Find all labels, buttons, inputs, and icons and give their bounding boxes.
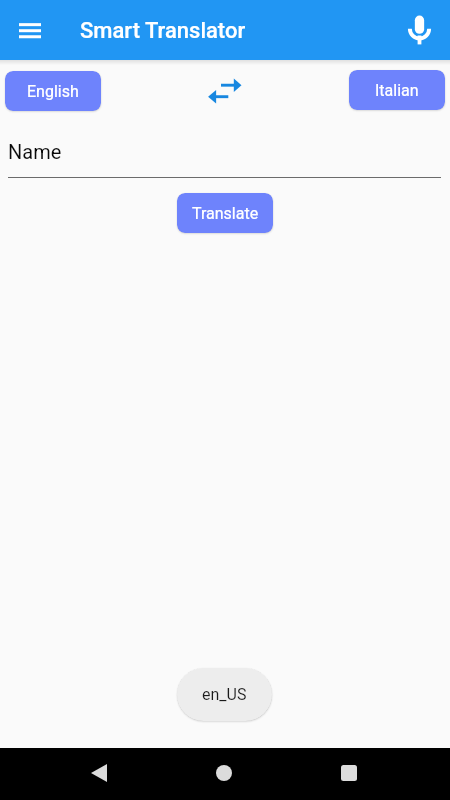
- staticText: Italian: [375, 81, 419, 100]
- button[interactable]: Swap languages: [202, 68, 248, 114]
- staticText: en_US: [202, 685, 247, 704]
- staticText: English: [27, 82, 79, 101]
- button[interactable]: Open navigation menu: [10, 10, 50, 50]
- button[interactable]: Recent apps: [329, 753, 369, 793]
- button[interactable]: Back: [79, 753, 119, 793]
- button[interactable]: Name: [8, 140, 62, 163]
- staticText: Translate: [192, 204, 259, 223]
- button[interactable]: Home: [204, 753, 244, 793]
- button[interactable]: en_US: [177, 668, 272, 721]
- staticText: Name: [8, 140, 62, 163]
- button[interactable]: Italian: [349, 70, 445, 110]
- button[interactable]: Translate: [177, 193, 273, 233]
- button[interactable]: English: [5, 71, 101, 111]
- staticText: Smart Translator: [80, 18, 246, 44]
- button[interactable]: Voice input: [398, 8, 441, 51]
